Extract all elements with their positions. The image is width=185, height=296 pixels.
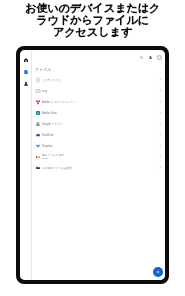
button[interactable]: Google ドライブ: [32, 118, 165, 129]
staticText: Adobe クラウドストレージ: [42, 100, 75, 104]
button[interactable]: その他のファイルを参照: [32, 162, 165, 173]
button[interactable]: 電子メールの 添付: [32, 151, 165, 162]
button[interactable]: OneDrive: [32, 129, 165, 140]
staticText: Adobe Scan: [42, 111, 57, 115]
button[interactable]: Dropbox: [32, 140, 165, 151]
button[interactable]: このデバイス上: [32, 74, 165, 85]
button[interactable]: Adobe Scan: [32, 107, 165, 118]
staticText: このデバイス上: [42, 78, 61, 81]
button[interactable]: Add file: [153, 267, 163, 277]
staticText: Google ドライブ: [42, 122, 63, 126]
button[interactable]: Profile: [155, 53, 164, 62]
button[interactable]: 写真: [32, 85, 165, 96]
staticText: 写真: [42, 89, 48, 92]
button[interactable]: Contacts: [146, 53, 155, 62]
staticText: ファイル: [35, 67, 51, 72]
button[interactable]: Adobe クラウドストレージ: [32, 96, 165, 107]
staticText: Dropbox: [42, 144, 53, 148]
staticText: お使いのデバイスまたはク ラウドからファイルに アクセスします: [0, 1, 185, 39]
button[interactable]: Files: [20, 66, 31, 78]
staticText: Gmail: [42, 157, 48, 160]
staticText: 電子メールの 添付: [42, 153, 64, 157]
button[interactable]: Account: [20, 78, 31, 90]
button[interactable]: Search: [137, 53, 146, 62]
staticText: その他のファイルを参照: [42, 166, 72, 169]
staticText: OneDrive: [42, 133, 54, 137]
button[interactable]: Home: [20, 54, 31, 66]
